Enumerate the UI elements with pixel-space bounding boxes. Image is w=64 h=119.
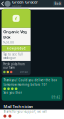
staticText: View product bbox=[7, 47, 26, 50]
staticText: Tap to see full catalogue bbox=[3, 53, 23, 60]
staticText: Mail Technician bbox=[3, 104, 33, 109]
staticText: online bbox=[12, 5, 22, 8]
staticText: 09:42 bbox=[52, 96, 61, 99]
staticText: See you then bbox=[3, 91, 22, 95]
staticText: Thanks for your support, we will bbox=[3, 110, 47, 114]
button[interactable]: Green Grocer bbox=[5, 0, 38, 8]
staticText: Green Grocer bbox=[12, 0, 38, 5]
staticText: Organic Veg Box bbox=[3, 29, 27, 40]
staticText: $24.00 bbox=[3, 41, 14, 44]
button[interactable]: Back bbox=[1, 2, 5, 6]
staticText: 09:41 bbox=[20, 70, 29, 74]
button[interactable]: View product bbox=[2, 45, 31, 51]
staticText: Fresh picks from our farm bbox=[3, 62, 24, 69]
staticText: Back bbox=[54, 2, 60, 5]
staticText: Thank you! Could you deliver the box bbox=[3, 78, 56, 82]
button[interactable]: Back bbox=[53, 1, 62, 6]
staticText: tomorrow morning before 10? bbox=[3, 83, 46, 86]
